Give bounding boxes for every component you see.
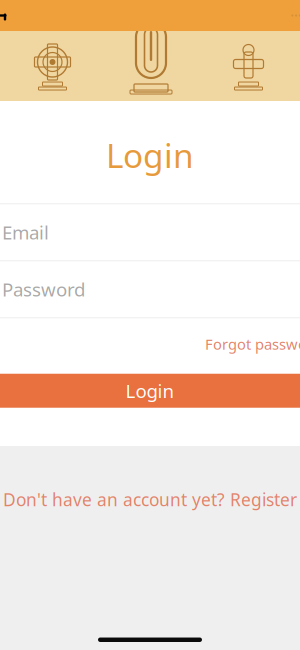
staticText: Password: [2, 277, 85, 302]
button[interactable]: Forgot password?: [205, 326, 300, 362]
staticText: Don't have an account yet? Register: [3, 488, 297, 511]
staticText: Email: [2, 220, 49, 245]
staticText: Login: [125, 378, 174, 403]
button[interactable]: Don't have an account yet? Register: [0, 478, 300, 521]
staticText: Forgot password?: [205, 334, 300, 354]
button[interactable]: Login: [0, 374, 300, 408]
staticText: Login: [106, 133, 194, 177]
